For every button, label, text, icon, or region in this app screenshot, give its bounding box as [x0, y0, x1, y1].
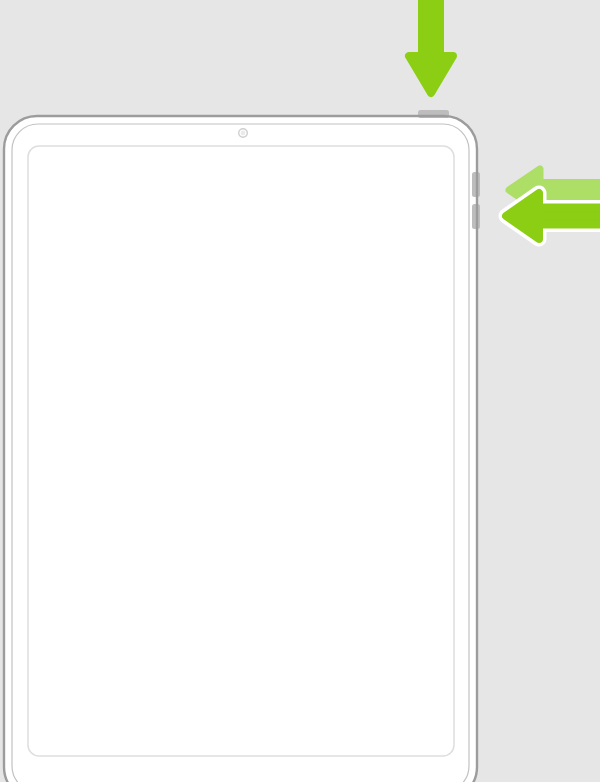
button[interactable]: iPad top and side button location diagra…: [0, 0, 600, 782]
